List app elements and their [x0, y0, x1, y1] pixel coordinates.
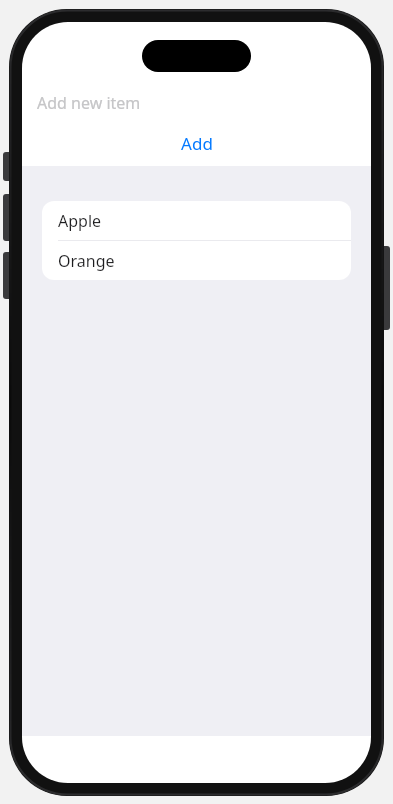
- button[interactable]: Orange: [42, 241, 351, 280]
- staticText: Apple: [58, 210, 102, 232]
- button[interactable]: Add new item: [22, 86, 371, 120]
- staticText: Orange: [58, 250, 115, 272]
- button[interactable]: Apple: [42, 201, 351, 241]
- button[interactable]: Add: [22, 128, 371, 158]
- staticText: Add new item: [37, 92, 141, 114]
- staticText: Add: [181, 132, 213, 155]
